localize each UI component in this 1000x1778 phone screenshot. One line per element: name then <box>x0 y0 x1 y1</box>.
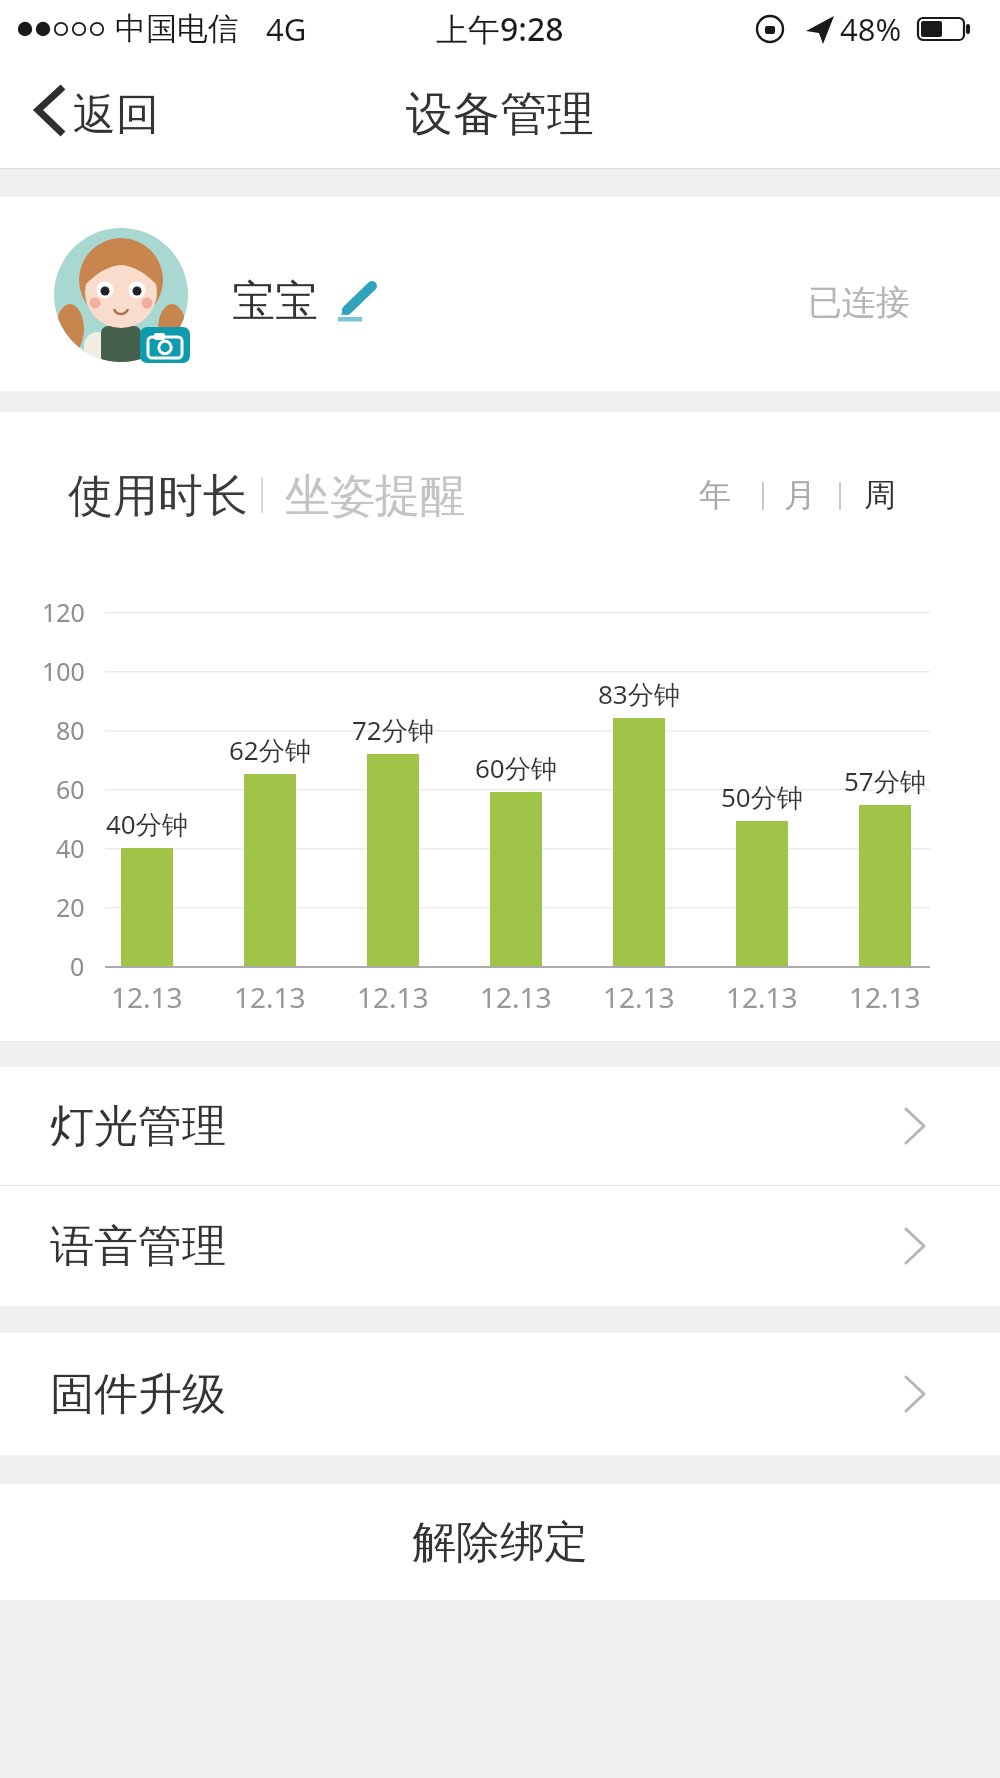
button[interactable] <box>338 282 380 322</box>
staticText: 月 <box>784 475 816 515</box>
staticText: 宝宝 <box>232 275 318 320</box>
staticText: 62分钟 <box>229 732 311 768</box>
staticText: 坐姿提醒 <box>285 468 465 522</box>
staticText: 上午9:28 <box>436 7 564 51</box>
staticText: 20 <box>56 890 85 924</box>
staticText: 12.13 <box>111 978 183 1016</box>
staticText: 80 <box>56 713 85 747</box>
staticText: 设备管理 <box>406 85 594 144</box>
staticText: 0 <box>70 949 85 983</box>
button[interactable]: 解除绑定 <box>0 1484 1000 1600</box>
staticText: 12.13 <box>357 978 429 1016</box>
staticText: 100 <box>42 654 85 688</box>
staticText: 12.13 <box>849 978 921 1016</box>
staticText: 4G <box>266 8 307 50</box>
button[interactable]: 宝宝 <box>232 275 352 320</box>
button[interactable]: 使用时长 <box>68 468 268 522</box>
button[interactable]: 坐姿提醒 <box>285 468 485 522</box>
button[interactable]: 固件升级 <box>0 1333 1000 1455</box>
staticText: 固件升级 <box>50 1367 226 1422</box>
staticText: 语音管理 <box>50 1219 226 1274</box>
staticText: 48% <box>840 8 902 50</box>
staticText: 57分钟 <box>844 763 926 799</box>
button[interactable]: 周 <box>855 474 905 516</box>
button[interactable]: 返回 <box>20 77 220 152</box>
staticText: 已连接 <box>808 281 910 321</box>
staticText: 12.13 <box>480 978 552 1016</box>
staticText: 60 <box>56 772 85 806</box>
staticText: 年 <box>699 475 731 515</box>
staticText: 周 <box>864 475 896 515</box>
staticText: 返回 <box>73 88 159 142</box>
button[interactable]: 灯光管理 <box>0 1067 1000 1185</box>
staticText: 中国电信 <box>115 9 239 48</box>
button[interactable]: 年 <box>690 474 740 516</box>
staticText: 40 <box>56 831 85 865</box>
button[interactable]: 语音管理 <box>0 1186 1000 1306</box>
staticText: 72分钟 <box>352 712 434 748</box>
staticText: 12.13 <box>603 978 675 1016</box>
staticText: 12.13 <box>726 978 798 1016</box>
staticText: 83分钟 <box>598 676 680 712</box>
staticText: 使用时长 <box>68 468 248 522</box>
staticText: 灯光管理 <box>50 1099 226 1154</box>
staticText: 120 <box>42 595 85 629</box>
button[interactable]: 月 <box>775 474 825 516</box>
staticText: 50分钟 <box>721 779 803 815</box>
staticText: 40分钟 <box>106 806 188 842</box>
staticText: 解除绑定 <box>412 1515 588 1570</box>
staticText: 12.13 <box>234 978 306 1016</box>
staticText: 60分钟 <box>475 750 557 786</box>
